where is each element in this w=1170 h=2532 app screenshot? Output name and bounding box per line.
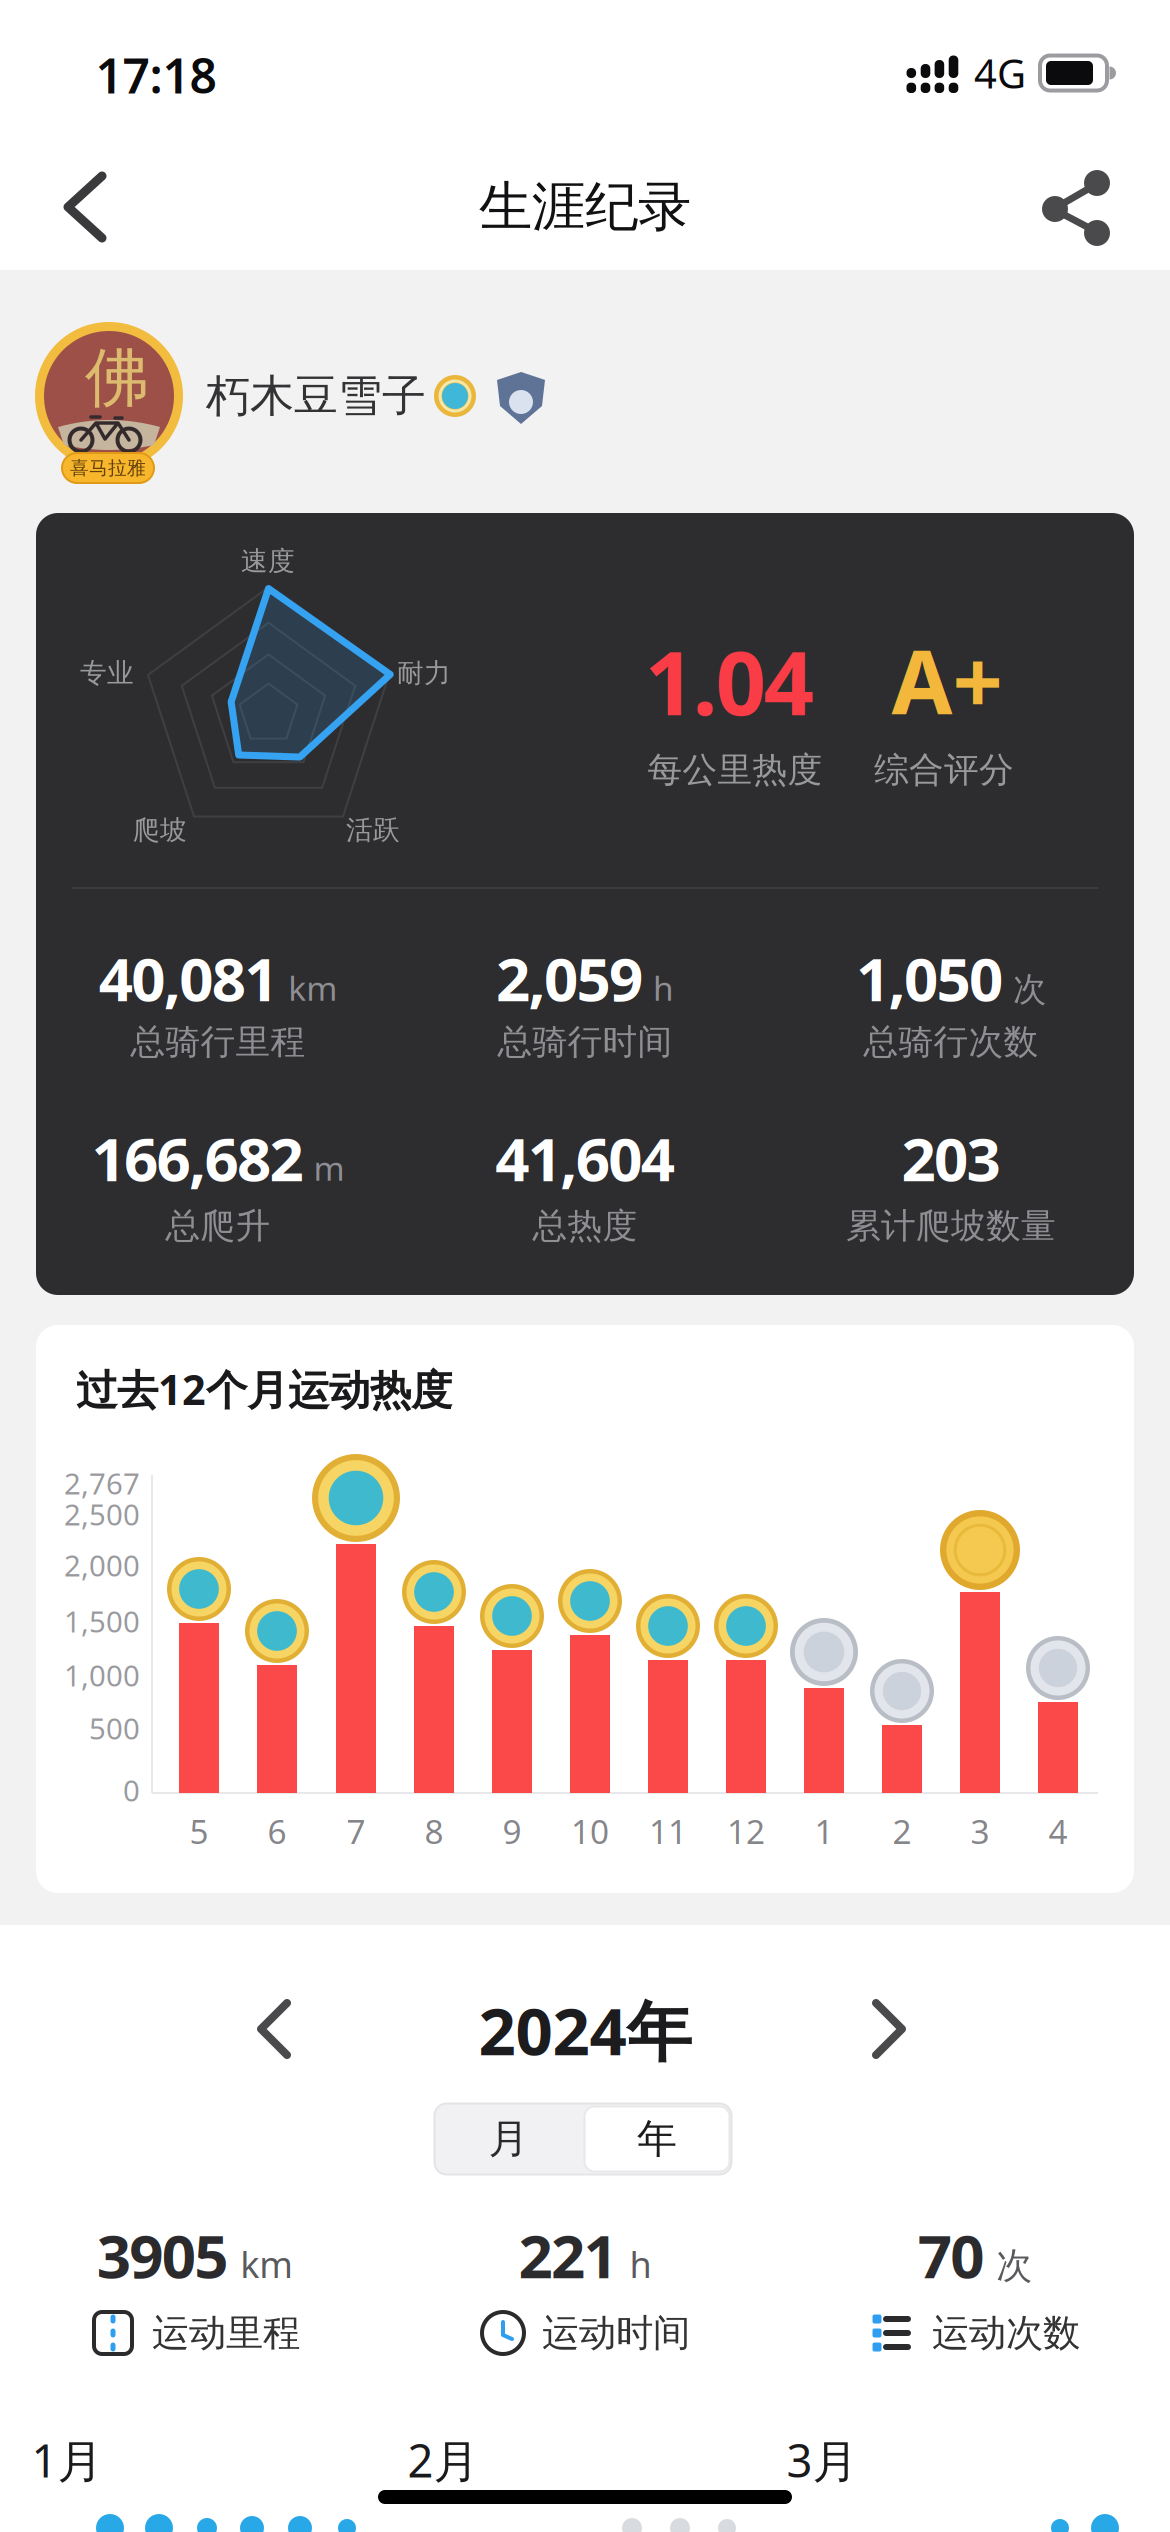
staticText: 41,604 — [495, 1118, 675, 1198]
staticText: 活跃 — [346, 814, 400, 846]
staticText: 40,081 — [99, 938, 278, 1018]
staticText: 总骑行里程 — [130, 1021, 305, 1063]
staticText: 6 — [267, 1809, 286, 1853]
staticText: 5 — [189, 1809, 208, 1853]
button[interactable]: 月 — [434, 2103, 582, 2174]
staticText: 佛 — [85, 339, 149, 417]
staticText: 每公里热度 — [647, 749, 822, 791]
staticText: 3905 — [97, 2215, 228, 2295]
staticText: 总骑行时间 — [497, 1021, 672, 1063]
staticText: 11 — [649, 1809, 687, 1853]
staticText: 次 — [1013, 969, 1046, 1010]
staticText: 2,059 — [496, 938, 643, 1018]
staticText: 运动时间 — [542, 2310, 690, 2356]
staticText: 月 — [488, 2114, 528, 2163]
staticText: 1,500 — [64, 1601, 140, 1640]
staticText: 运动次数 — [932, 2310, 1080, 2356]
staticText: 166,682 — [91, 1118, 303, 1198]
staticText: 4G — [974, 46, 1026, 99]
staticText: 专业 — [80, 657, 134, 689]
staticText: 10 — [571, 1809, 609, 1853]
staticText: 1月 — [31, 2430, 102, 2490]
button[interactable]: Share — [1035, 165, 1119, 249]
staticText: A+ — [891, 622, 1002, 738]
staticText: 2,500 — [64, 1494, 140, 1533]
staticText: 总热度 — [532, 1205, 637, 1247]
staticText: 221 — [518, 2215, 617, 2295]
staticText: km — [288, 966, 337, 1010]
button[interactable]: 上一年 — [244, 1993, 304, 2065]
staticText: m — [313, 1146, 344, 1190]
staticText: 累计爬坡数量 — [846, 1205, 1056, 1247]
staticText: 次 — [996, 2244, 1032, 2288]
staticText: 总爬升 — [165, 1205, 270, 1247]
staticText: 70 — [918, 2215, 984, 2295]
staticText: 12 — [727, 1809, 765, 1853]
staticText: 1,000 — [64, 1655, 140, 1694]
staticText: 喜马拉雅 — [70, 456, 146, 479]
staticText: 17:18 — [95, 43, 216, 107]
staticText: 总骑行次数 — [863, 1021, 1038, 1063]
staticText: 2月 — [407, 2430, 478, 2490]
staticText: h — [653, 966, 674, 1010]
staticText: 8 — [424, 1809, 443, 1853]
staticText: 速度 — [241, 545, 295, 577]
staticText: 1 — [814, 1809, 833, 1853]
staticText: 1.04 — [644, 623, 813, 739]
staticText: 生涯纪录 — [479, 174, 691, 240]
button[interactable]: Back — [43, 163, 127, 251]
staticText: 500 — [89, 1708, 140, 1747]
staticText: 2 — [892, 1809, 911, 1853]
staticText: 0 — [123, 1770, 140, 1809]
staticText: 1,050 — [856, 938, 1003, 1018]
staticText: 爬坡 — [133, 814, 187, 846]
staticText: 耐力 — [397, 657, 451, 689]
staticText: 3月 — [786, 2430, 857, 2490]
staticText: 运动里程 — [152, 2310, 300, 2356]
staticText: 年 — [637, 2114, 677, 2163]
staticText: 2,000 — [64, 1545, 140, 1584]
button[interactable]: 年 — [582, 2103, 731, 2174]
button[interactable]: 头像 — [35, 322, 183, 470]
staticText: 2024年 — [478, 1987, 691, 2073]
button[interactable]: 下一年 — [859, 1993, 919, 2065]
staticText: 4 — [1048, 1809, 1067, 1853]
staticText: 3 — [970, 1809, 989, 1853]
staticText: km — [240, 2240, 293, 2288]
staticText: 203 — [901, 1118, 1000, 1198]
staticText: 7 — [346, 1809, 365, 1853]
staticText: 朽木豆雪子 — [206, 369, 426, 423]
staticText: 2,767 — [64, 1463, 140, 1502]
staticText: 综合评分 — [874, 749, 1014, 791]
staticText: 过去12个月运动热度 — [76, 1362, 452, 1416]
staticText: h — [629, 2240, 651, 2288]
staticText: 9 — [502, 1809, 521, 1853]
